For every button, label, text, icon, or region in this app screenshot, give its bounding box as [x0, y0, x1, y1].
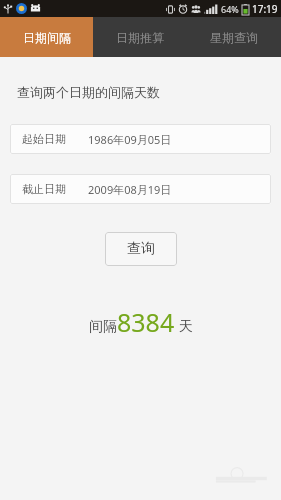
button[interactable]: 查询 [105, 232, 177, 266]
staticText: 日期推算 [116, 30, 164, 45]
button[interactable]: 日期间隔 [0, 17, 93, 57]
button[interactable]: 截止日期 [10, 174, 271, 204]
staticText: 64% [221, 3, 239, 15]
button[interactable]: 起始日期 [10, 124, 271, 154]
staticText: 起始日期 [22, 132, 66, 146]
staticText: 8384 [117, 305, 175, 339]
staticText: 17:19 [252, 2, 278, 16]
staticText: 1986年09月05日 [88, 132, 172, 147]
staticText: 查询 [127, 240, 155, 258]
staticText: 日期间隔 [23, 30, 71, 45]
staticText: 星期查询 [210, 30, 258, 45]
staticText: 天 [179, 318, 193, 336]
staticText: 间隔 [89, 318, 117, 336]
staticText: 截止日期 [22, 182, 66, 196]
button[interactable]: 星期查询 [187, 17, 281, 57]
button[interactable]: 日期推算 [93, 17, 187, 57]
staticText: 查询两个日期的间隔天数 [17, 84, 160, 100]
staticText: 2009年08月19日 [88, 182, 172, 197]
